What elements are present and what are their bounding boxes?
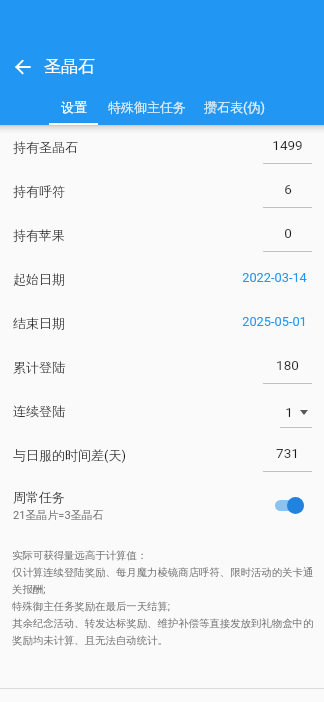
staticText: 2022-03-14 bbox=[242, 270, 307, 285]
staticText: 累计登陆 bbox=[13, 359, 65, 375]
staticText: 起始日期 bbox=[13, 271, 65, 287]
staticText: 0 bbox=[284, 225, 292, 241]
staticText: 与日服的时间差(天) bbox=[13, 447, 126, 463]
button[interactable]: 持有圣晶石 bbox=[0, 125, 324, 169]
button[interactable]: 与日服的时间差(天) bbox=[0, 433, 324, 477]
staticText: 设置 bbox=[61, 99, 87, 115]
button[interactable]: Toggle weekly quest bbox=[275, 496, 304, 514]
staticText: 攒石表(伪) bbox=[204, 99, 265, 115]
button[interactable]: Back bbox=[4, 48, 41, 85]
button[interactable]: 起始日期 bbox=[0, 257, 324, 301]
staticText: 731 bbox=[276, 445, 299, 461]
staticText: 圣晶石 bbox=[44, 56, 95, 77]
staticText: 其余纪念活动、转发达标奖励、维护补偿等直接发放到礼物盒中的 bbox=[12, 617, 314, 630]
staticText: 持有圣晶石 bbox=[13, 139, 78, 155]
staticText: 关报酬; bbox=[12, 583, 46, 596]
staticText: 21圣晶片=3圣晶石 bbox=[13, 508, 104, 522]
button[interactable]: 设置 bbox=[49, 94, 98, 125]
staticText: 仅计算连续登陆奖励、每月魔力棱镜商店呼符、限时活动的关卡通 bbox=[12, 566, 314, 579]
staticText: 持有苹果 bbox=[13, 227, 65, 243]
staticText: 奖励均未计算、且无法自动统计。 bbox=[12, 634, 168, 647]
button[interactable]: 持有呼符 bbox=[0, 169, 324, 213]
button[interactable]: 攒石表(伪) bbox=[196, 94, 273, 125]
staticText: 特殊御主任务奖励在最后一天结算; bbox=[12, 600, 171, 613]
staticText: 结束日期 bbox=[13, 315, 65, 331]
button[interactable]: 特殊御主任务 bbox=[98, 94, 196, 125]
button[interactable]: 连续登陆 bbox=[0, 389, 324, 433]
button[interactable]: 持有苹果 bbox=[0, 213, 324, 257]
button[interactable]: 累计登陆 bbox=[0, 345, 324, 389]
staticText: 2025-05-01 bbox=[242, 314, 307, 329]
staticText: 6 bbox=[284, 181, 292, 197]
staticText: 1499 bbox=[272, 137, 303, 153]
staticText: 周常任务 bbox=[13, 489, 65, 505]
button[interactable]: 结束日期 bbox=[0, 301, 324, 345]
button[interactable]: 周常任务 bbox=[0, 477, 324, 521]
staticText: 1 bbox=[285, 404, 293, 420]
staticText: 实际可获得量远高于计算值： bbox=[12, 549, 148, 562]
staticText: 持有呼符 bbox=[13, 183, 65, 199]
staticText: 连续登陆 bbox=[13, 403, 65, 419]
staticText: 180 bbox=[276, 357, 299, 373]
staticText: 特殊御主任务 bbox=[108, 99, 186, 115]
